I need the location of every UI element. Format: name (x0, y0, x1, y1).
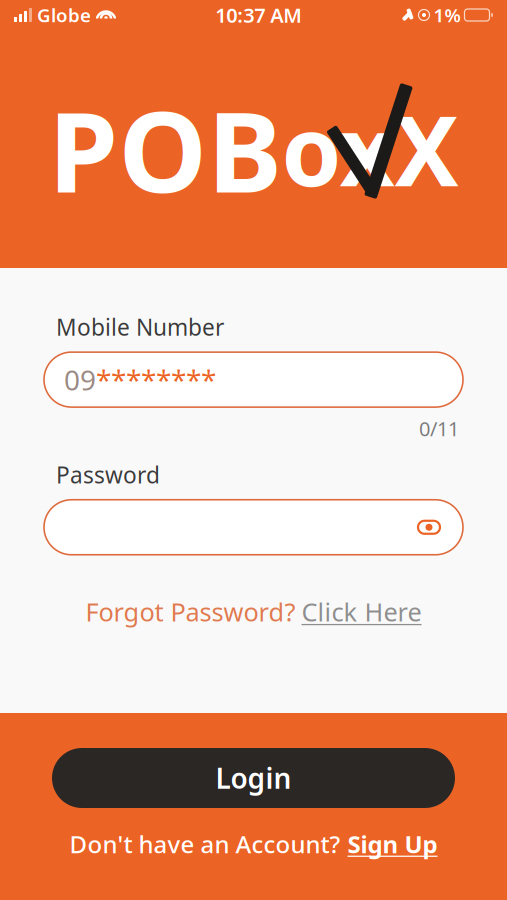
staticText: oxX (281, 85, 458, 213)
staticText: Sign Up (347, 828, 437, 860)
staticText: 10:37 AM (215, 2, 302, 28)
button[interactable]: Show password (407, 507, 451, 547)
staticText: Forgot Password? (85, 595, 295, 628)
staticText: POB (48, 75, 281, 223)
staticText: Password (56, 460, 160, 490)
staticText: ******** (96, 361, 216, 398)
staticText: Login (215, 759, 291, 797)
button[interactable]: Forgot Password? (44, 589, 463, 634)
staticText: 09 (64, 361, 96, 398)
button[interactable]: Don't have an Account? (0, 822, 507, 866)
staticText: Mobile Number (56, 312, 224, 342)
staticText: 0/11 (419, 415, 459, 442)
staticText: 1% (433, 3, 460, 27)
staticText: Click Here (301, 595, 421, 628)
button[interactable]: Login (52, 748, 455, 808)
staticText: Globe (37, 3, 91, 27)
staticText: Don't have an Account? (69, 828, 340, 860)
